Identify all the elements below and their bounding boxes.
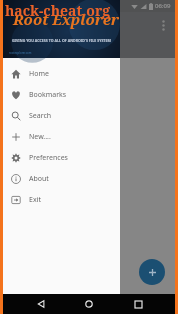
staticText: Exit: [29, 195, 41, 205]
button[interactable]: Back: [30, 294, 52, 314]
button[interactable]: Recent apps: [127, 294, 149, 314]
staticText: GIVING YOU ACCESS TO ALL OF ANDROID'S FI…: [12, 38, 111, 43]
button[interactable]: Search: [3, 105, 120, 126]
staticText: rootexplorer.com: [9, 51, 32, 55]
staticText: Search: [29, 111, 52, 121]
staticText: About: [29, 174, 49, 184]
button[interactable]: New....: [3, 126, 120, 147]
button[interactable]: Preferences: [3, 147, 120, 168]
staticText: Bookmarks: [29, 90, 67, 100]
button[interactable]: About: [3, 168, 120, 189]
staticText: Home: [29, 69, 49, 79]
staticText: STORAGE: [8, 44, 37, 53]
staticText: hack-cheat.org: [5, 1, 111, 20]
button[interactable]: Bookmarks: [3, 84, 120, 105]
button[interactable]: Exit: [3, 189, 120, 210]
button[interactable]: Home: [78, 294, 100, 314]
staticText: New....: [29, 132, 51, 142]
staticText: 06:09: [155, 2, 171, 10]
button[interactable]: Home: [3, 63, 120, 84]
staticText: Preferences: [29, 153, 68, 163]
button[interactable]: Add: [139, 259, 165, 285]
staticText: Root Explorer: [13, 9, 120, 29]
button[interactable]: More options: [155, 17, 171, 33]
